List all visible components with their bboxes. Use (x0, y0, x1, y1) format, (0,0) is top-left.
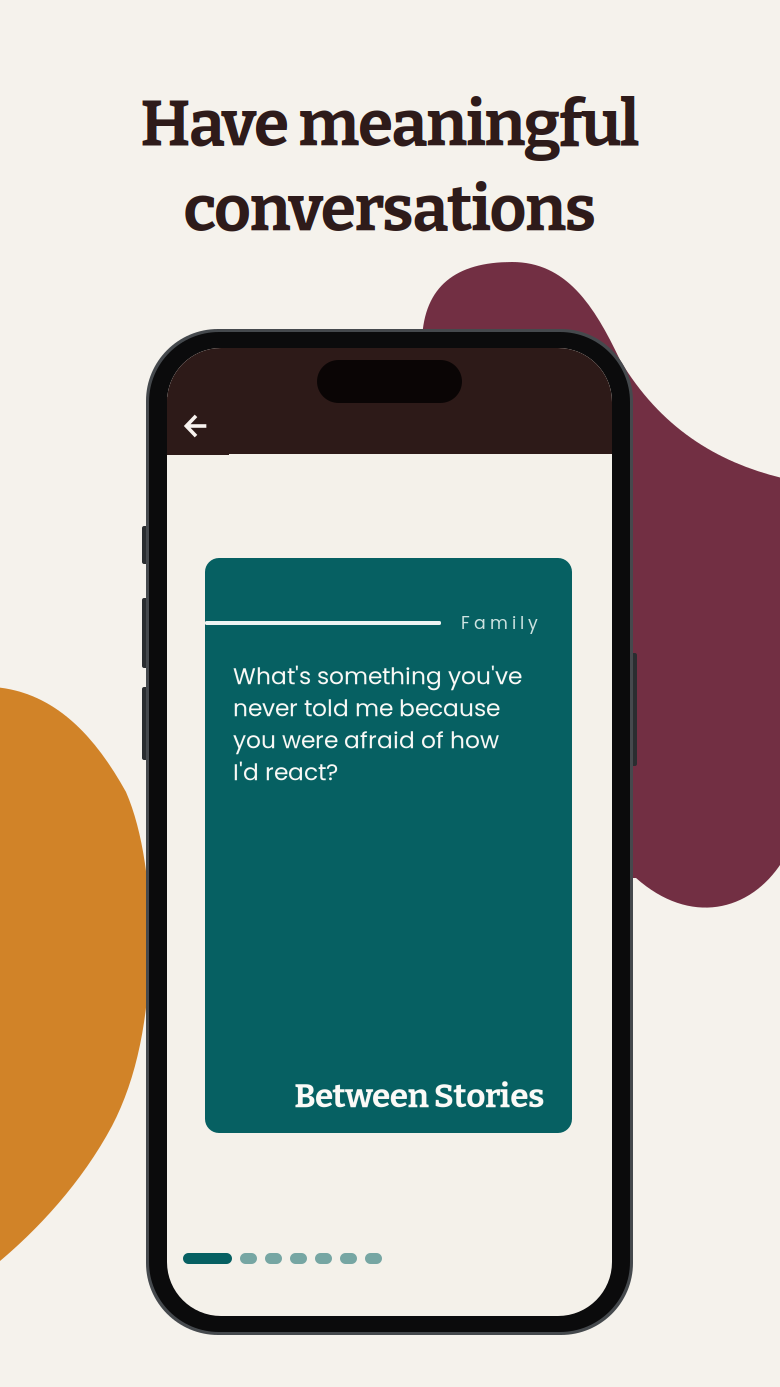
staticText: What's something you've (233, 660, 522, 692)
button[interactable]: Back (167, 397, 229, 455)
staticText: Between Stories (294, 1076, 544, 1116)
staticText: I'd react? (233, 756, 338, 788)
staticText: you were afraid of how (233, 724, 499, 756)
staticText: F a m i l y (461, 611, 538, 635)
staticText: never told me because (233, 692, 500, 724)
staticText: Have meaningful (140, 86, 640, 163)
staticText: conversations (183, 171, 597, 248)
button[interactable]: F a m i l y (205, 558, 572, 1133)
